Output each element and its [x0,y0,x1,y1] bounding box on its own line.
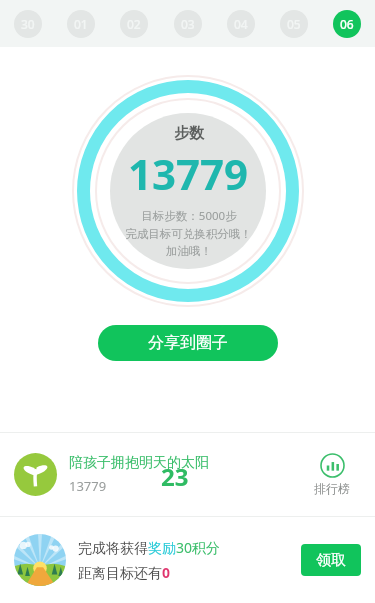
button[interactable]: 分享到圈子 [98,325,278,361]
button[interactable]: 04 [227,10,255,38]
staticText: 06 [340,16,354,32]
staticText: 步数 [174,124,204,143]
button[interactable]: 30 [14,10,42,38]
staticText: 05 [287,16,301,32]
button[interactable]: 01 [67,10,95,38]
staticText: 完成将获得奖励30积分 [78,538,221,557]
staticText: 04 [234,16,248,32]
staticText: 目标步数：5000步 [141,208,237,224]
staticText: 13779 [69,477,107,495]
staticText: 23 [161,460,189,493]
button[interactable]: 领取 [301,544,361,576]
staticText: 陪孩子拥抱明天的太阳 [69,454,209,472]
staticText: 加油哦！ [166,244,212,258]
staticText: 分享到圈子 [148,333,228,353]
button[interactable]: 06 [333,10,361,38]
staticText: 30 [21,16,35,32]
staticText: 01 [74,16,88,32]
staticText: 排行榜 [314,481,350,496]
button[interactable]: 05 [280,10,308,38]
staticText: 13779 [128,145,249,202]
staticText: 03 [181,16,195,32]
button[interactable]: 排行榜 [303,453,361,496]
staticText: 02 [127,16,141,32]
button[interactable]: 02 [120,10,148,38]
staticText: 完成目标可兑换积分哦！ [125,227,252,241]
button[interactable]: 陪孩子拥抱明天的太阳 [0,433,375,516]
staticText: 距离目标还有0 [78,563,171,582]
staticText: 领取 [316,551,346,570]
button[interactable]: 03 [174,10,202,38]
